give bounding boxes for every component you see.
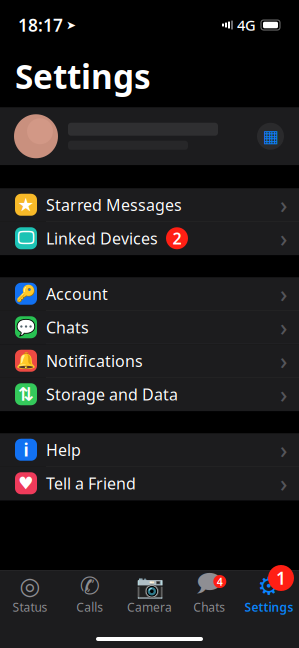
staticText: 4G xyxy=(237,15,256,35)
staticText: ♥ xyxy=(18,473,34,493)
staticText: 🔔 xyxy=(16,352,36,370)
staticText: Storage and Data xyxy=(46,384,178,405)
staticText: › xyxy=(280,223,287,253)
staticText: ⇅ xyxy=(18,384,34,405)
staticText: 🗩 xyxy=(196,566,223,606)
staticText: Linked Devices xyxy=(46,228,158,249)
button[interactable]: ▦ xyxy=(0,107,299,165)
staticText: 4 xyxy=(217,574,223,589)
staticText: › xyxy=(280,379,287,409)
staticText: ⚙ xyxy=(258,572,281,600)
button[interactable]: 📷 xyxy=(120,570,179,615)
button[interactable]: i xyxy=(0,433,299,467)
staticText: › xyxy=(280,346,287,376)
staticText: › xyxy=(280,312,287,342)
staticText: 18:17 xyxy=(18,13,63,36)
staticText: ★ xyxy=(17,194,34,215)
staticText: › xyxy=(280,468,287,498)
staticText: Calls xyxy=(76,599,103,615)
staticText: Settings xyxy=(245,599,294,615)
staticText: i xyxy=(23,438,28,461)
button[interactable]: ⚙ xyxy=(239,570,299,615)
staticText: › xyxy=(280,435,287,465)
staticText: ✆ xyxy=(80,572,100,600)
button[interactable]: 🖵 xyxy=(0,222,299,255)
staticText: 📷 xyxy=(135,573,163,599)
button[interactable]: ✆ xyxy=(60,570,120,615)
button[interactable]: 🔑 xyxy=(0,277,299,311)
staticText: ◎ xyxy=(19,572,40,600)
staticText: Chats xyxy=(193,599,225,615)
staticText: Help xyxy=(46,439,81,460)
button[interactable]: 🗩 xyxy=(179,570,239,615)
button[interactable]: ♥ xyxy=(0,467,299,500)
staticText: 2 xyxy=(172,228,181,249)
staticText: Starred Messages xyxy=(46,194,182,215)
staticText: › xyxy=(280,279,287,309)
button[interactable]: ◎ xyxy=(0,570,60,615)
staticText: Status xyxy=(12,599,47,615)
staticText: › xyxy=(280,190,287,220)
staticText: 💬 xyxy=(16,318,36,336)
staticText: Chats xyxy=(46,317,89,338)
staticText: 🖵 xyxy=(17,230,34,247)
staticText: Notifications xyxy=(46,350,143,371)
staticText: ➤ xyxy=(66,18,76,32)
button[interactable]: ★ xyxy=(0,188,299,222)
staticText: 🔑 xyxy=(16,285,36,303)
staticText: Settings xyxy=(15,54,151,98)
staticText: Camera xyxy=(127,599,172,615)
staticText: Account xyxy=(46,283,108,304)
staticText: Tell a Friend xyxy=(46,473,136,494)
button[interactable]: 🔔 xyxy=(0,344,299,378)
button[interactable]: ⇅ xyxy=(0,378,299,411)
button[interactable]: 💬 xyxy=(0,311,299,344)
staticText: ▦ xyxy=(262,126,278,146)
staticText: 1 xyxy=(276,566,286,589)
